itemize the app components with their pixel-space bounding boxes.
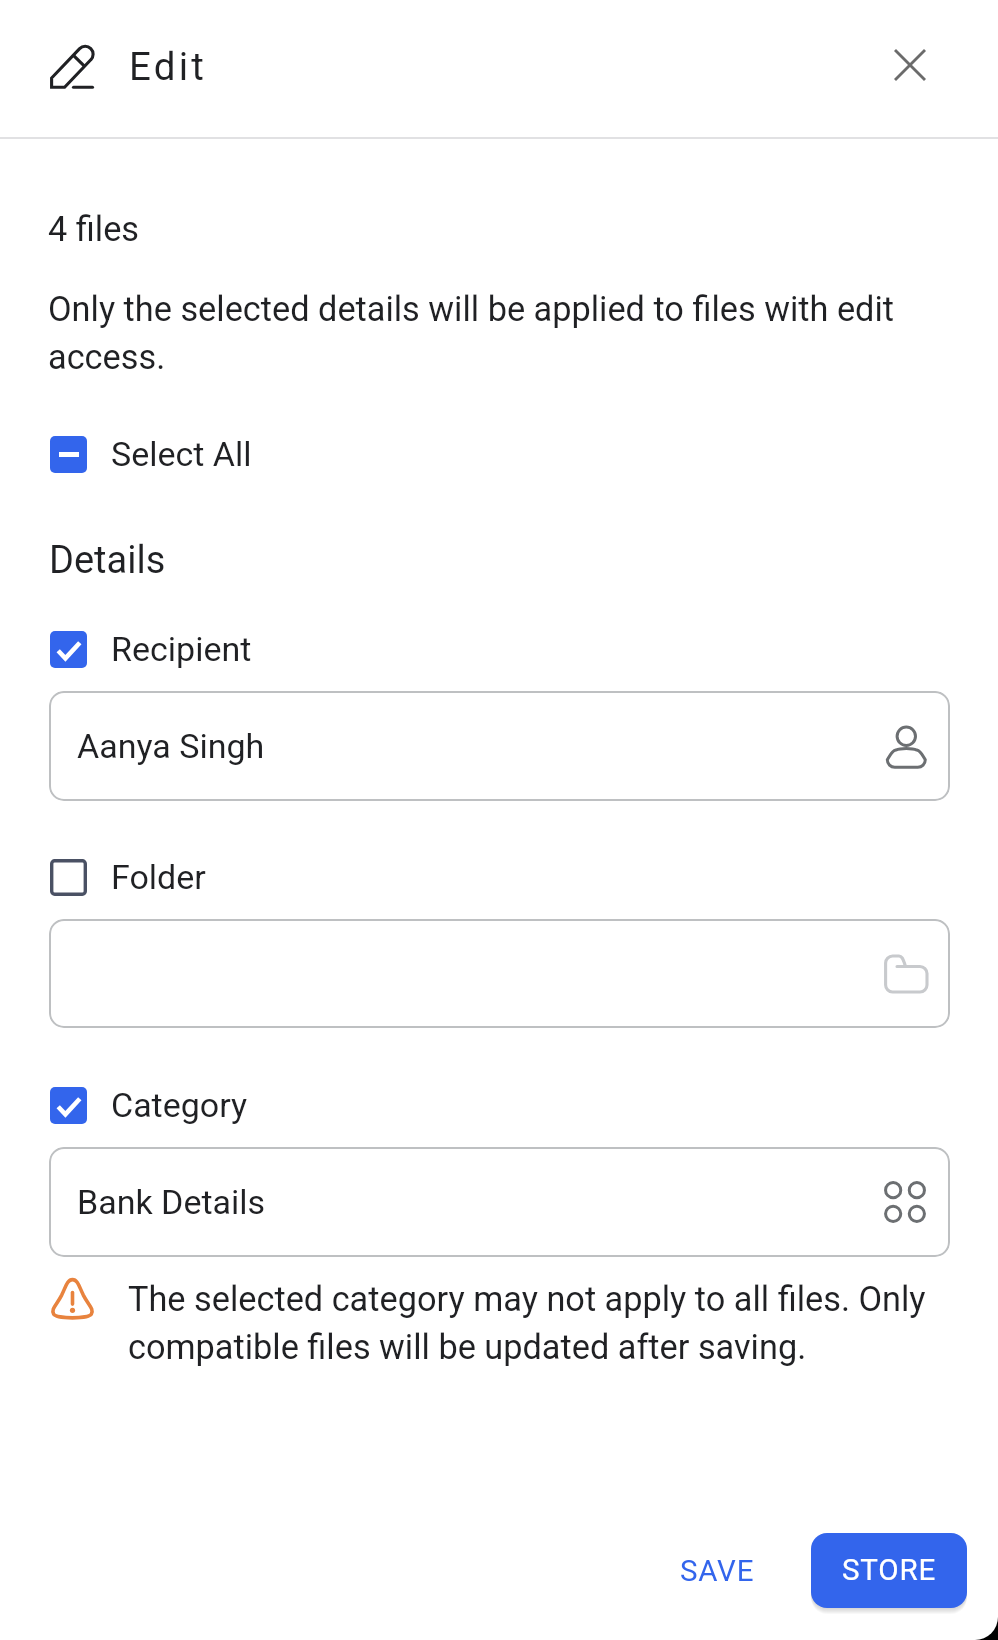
staticText: Category (111, 1085, 248, 1125)
staticText: SAVE (680, 1554, 755, 1589)
staticText: Aanya Singh (77, 726, 265, 766)
button[interactable]: Category (49, 1147, 950, 1257)
button[interactable]: Folder (49, 919, 950, 1028)
button[interactable]: Edit (30, 25, 114, 109)
staticText: Only the selected details will be applie… (48, 289, 894, 377)
button[interactable]: STORE (811, 1533, 967, 1608)
button[interactable]: Select All (50, 429, 252, 479)
staticText: Select All (111, 434, 252, 474)
button[interactable]: Recipient (50, 624, 252, 674)
staticText: STORE (842, 1553, 936, 1588)
staticText: Recipient (111, 629, 252, 669)
staticText: Edit (129, 44, 207, 89)
button[interactable]: SAVE (648, 1527, 787, 1615)
button[interactable]: Category (50, 1080, 248, 1130)
button[interactable]: Folder (50, 852, 206, 902)
staticText: 4 files (48, 209, 140, 249)
staticText: The selected category may not apply to a… (128, 1279, 926, 1367)
button[interactable]: Close (868, 23, 952, 107)
staticText: Details (49, 538, 166, 583)
button[interactable]: Recipient (49, 691, 950, 801)
staticText: Bank Details (77, 1182, 266, 1222)
staticText: Folder (111, 857, 206, 897)
